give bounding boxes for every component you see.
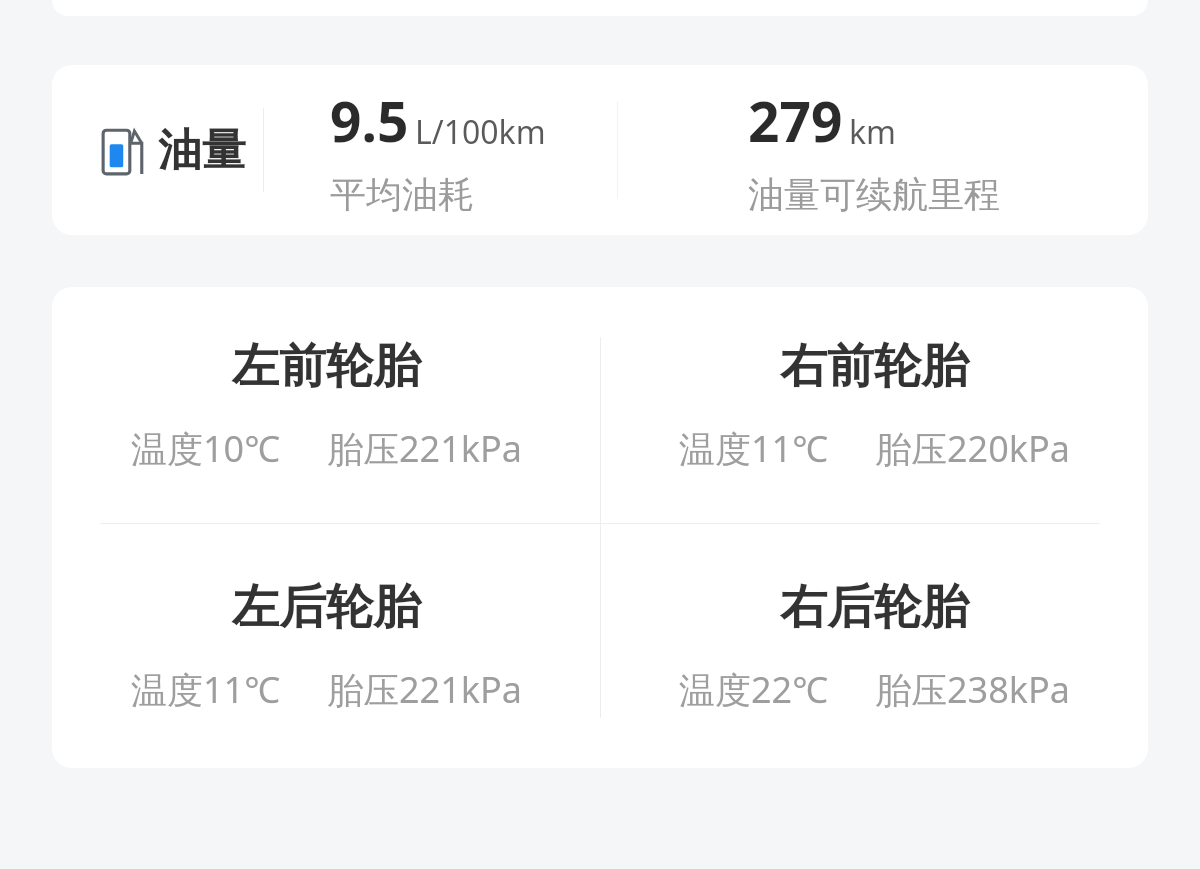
button[interactable]: 左后轮胎 [52, 524, 600, 768]
staticText: 胎压220kPa [875, 424, 1070, 473]
button[interactable]: 左前轮胎 [52, 287, 600, 523]
staticText: 温度11℃ [131, 665, 281, 714]
staticText: 温度10℃ [131, 424, 281, 473]
button[interactable]: 右前轮胎 [600, 287, 1148, 523]
staticText: 右前轮胎 [780, 337, 968, 396]
staticText: 右后轮胎 [780, 578, 968, 637]
staticText: 平均油耗 [330, 172, 474, 217]
other: 油量 Fuel [52, 123, 263, 178]
staticText: L/100km [415, 110, 546, 154]
staticText: 279 [748, 83, 843, 158]
staticText: 胎压221kPa [327, 424, 522, 473]
staticText: 左后轮胎 [232, 578, 420, 637]
staticText: 胎压221kPa [327, 665, 522, 714]
staticText: 油量可续航里程 [748, 172, 1000, 217]
staticText: 9.5 [330, 83, 409, 158]
staticText: 温度22℃ [679, 665, 829, 714]
staticText: 温度11℃ [679, 424, 829, 473]
staticText: 左前轮胎 [232, 337, 420, 396]
staticText: 油量 [158, 123, 246, 178]
staticText: 胎压238kPa [875, 665, 1070, 714]
staticText: km [849, 110, 897, 154]
button[interactable]: 油量 Fuel [52, 65, 1148, 235]
button[interactable]: 右后轮胎 [600, 524, 1148, 768]
